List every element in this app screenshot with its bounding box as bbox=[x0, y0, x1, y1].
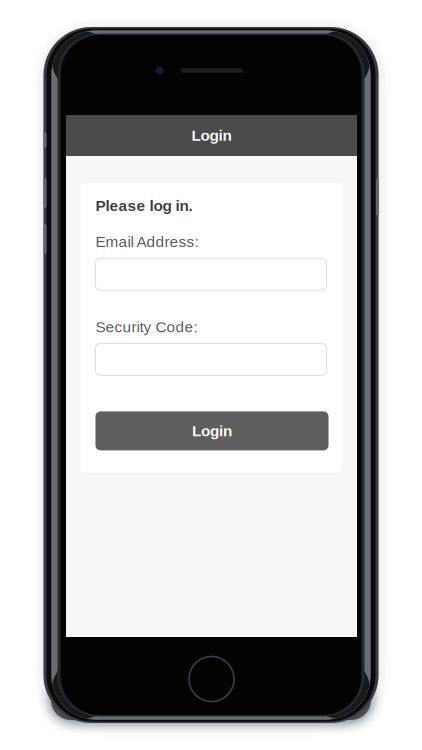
staticText: Login bbox=[191, 127, 231, 144]
button[interactable]: Email Address bbox=[95, 258, 326, 290]
button[interactable]: Security Code bbox=[95, 343, 326, 375]
staticText: Email Address: bbox=[95, 233, 198, 250]
staticText: Login bbox=[192, 422, 232, 439]
staticText: Please log in. bbox=[95, 197, 192, 214]
staticText: Security Code: bbox=[95, 318, 197, 335]
button[interactable]: Login bbox=[95, 411, 328, 450]
